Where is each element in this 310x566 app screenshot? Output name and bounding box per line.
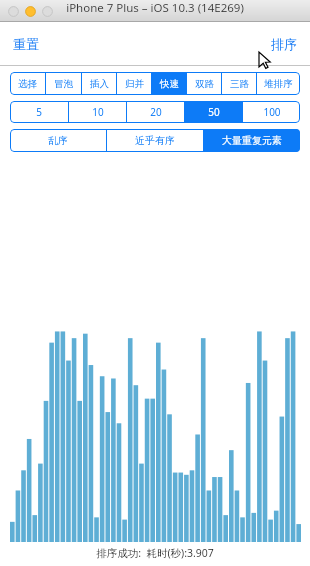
staticText: 插入 (90, 78, 109, 90)
button[interactable]: 双路 (187, 72, 221, 95)
button[interactable]: 堆排序 (257, 72, 300, 95)
button[interactable]: 近乎有序 (107, 129, 203, 152)
staticText: 选择 (18, 78, 37, 90)
button[interactable]: 排序 (266, 31, 302, 57)
button[interactable]: 10 (69, 101, 126, 123)
staticText: 50 (208, 105, 220, 119)
button[interactable]: Close window (8, 6, 19, 17)
staticText: 堆排序 (264, 78, 293, 90)
button[interactable]: 大量重复元素 (204, 129, 300, 152)
staticText: iPhone 7 Plus – iOS 10.3 (14E269) (66, 0, 244, 16)
button[interactable]: 5 (10, 101, 68, 123)
staticText: 10 (92, 105, 104, 119)
staticText: 100 (263, 105, 281, 119)
staticText: 排序 (271, 36, 297, 52)
button[interactable]: 插入 (82, 72, 116, 95)
button[interactable]: 三路 (222, 72, 256, 95)
staticText: 排序成功: 耗时(秒):3.907 (96, 546, 214, 560)
staticText: 双路 (195, 78, 214, 90)
staticText: 归并 (125, 78, 144, 90)
staticText: 三路 (230, 78, 249, 90)
button[interactable]: 归并 (117, 72, 151, 95)
button[interactable]: 冒泡 (46, 72, 81, 95)
button[interactable]: 100 (243, 101, 300, 123)
button[interactable]: 重置 (8, 31, 44, 57)
button[interactable]: 乱序 (10, 129, 106, 152)
staticText: 重置 (13, 36, 39, 52)
button[interactable]: 20 (127, 101, 184, 123)
staticText: 20 (150, 105, 162, 119)
staticText: 5 (36, 105, 42, 119)
button[interactable]: 快速 (152, 72, 186, 95)
staticText: 大量重复元素 (222, 134, 282, 147)
button[interactable]: 选择 (10, 72, 45, 95)
staticText: 近乎有序 (135, 134, 175, 147)
button[interactable]: Zoom window (42, 6, 53, 17)
button[interactable]: Minimize window (25, 6, 36, 17)
staticText: 乱序 (48, 134, 68, 147)
button[interactable]: 50 (185, 101, 242, 123)
staticText: 快速 (160, 78, 179, 90)
staticText: 冒泡 (54, 78, 73, 90)
